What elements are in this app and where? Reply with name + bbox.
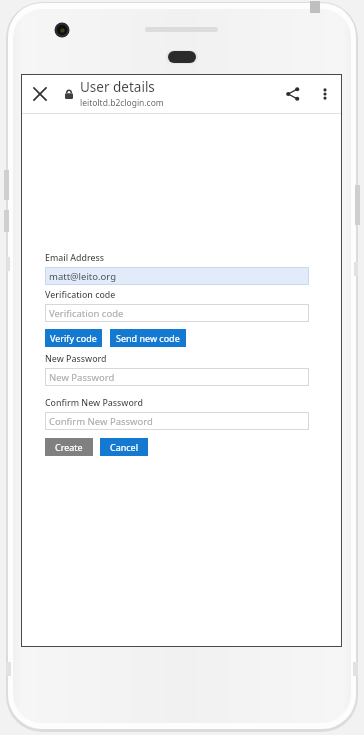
button[interactable]: New Password	[45, 368, 309, 386]
staticText: Verify code	[50, 332, 97, 344]
staticText: Send new code	[116, 332, 180, 344]
button[interactable]: Site information	[59, 74, 79, 113]
staticText: Email Address	[45, 252, 105, 264]
button[interactable]: Close	[21, 75, 59, 113]
button[interactable]: More options	[310, 79, 340, 109]
button[interactable]: Cancel	[100, 438, 148, 456]
button[interactable]: Send new code	[110, 329, 186, 347]
staticText: Create	[55, 441, 83, 453]
staticText: New Password	[49, 371, 115, 384]
button[interactable]: Share	[276, 77, 310, 111]
button[interactable]: Verification code	[45, 304, 309, 322]
button[interactable]: Create	[45, 438, 93, 456]
staticText: Verification code	[49, 307, 124, 320]
staticText: Verification code	[45, 289, 116, 301]
staticText: matt@leito.org	[49, 270, 117, 283]
staticText: leitoltd.b2clogin.com	[80, 97, 164, 109]
button[interactable]: matt@leito.org	[45, 267, 309, 285]
button[interactable]: Confirm New Password	[45, 412, 309, 430]
staticText: User details	[80, 78, 155, 96]
staticText: Confirm New Password	[45, 397, 143, 409]
staticText: Confirm New Password	[49, 415, 153, 428]
staticText: New Password	[45, 353, 107, 365]
staticText: Cancel	[110, 441, 139, 453]
button[interactable]: Verify code	[45, 329, 102, 347]
